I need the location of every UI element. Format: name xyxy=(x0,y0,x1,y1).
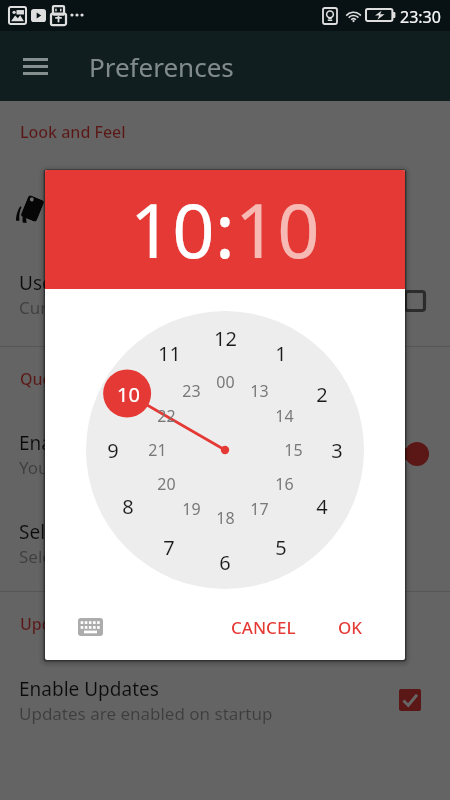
staticText: 10 xyxy=(235,179,320,280)
staticText: 13 xyxy=(250,380,269,402)
staticText: Select difficulty xyxy=(19,519,154,545)
staticText: Select theme xyxy=(65,188,175,213)
button[interactable]: Toggle Enable quests xyxy=(394,441,442,467)
staticText: 19 xyxy=(182,498,201,520)
staticText: Enable quests xyxy=(19,430,144,456)
staticText: 8 xyxy=(122,493,134,520)
staticText: Selected: Normal xyxy=(19,545,156,568)
staticText: 11 xyxy=(158,340,181,367)
button[interactable]: 17 xyxy=(237,495,281,523)
staticText: OK xyxy=(338,616,363,639)
button[interactable]: Select theme xyxy=(0,160,450,260)
button[interactable]: 19 xyxy=(169,495,213,523)
button[interactable]: CANCEL xyxy=(221,606,306,649)
staticText: 18 xyxy=(216,507,235,529)
button[interactable]: 5 xyxy=(255,533,307,561)
button[interactable]: 10 xyxy=(102,380,154,408)
button[interactable]: 22 xyxy=(144,402,188,430)
staticText: 4 xyxy=(316,493,328,520)
staticText: Material Light xyxy=(65,212,163,232)
staticText: 5 xyxy=(275,534,287,561)
staticText: 1 xyxy=(275,340,287,367)
staticText: : xyxy=(215,179,235,280)
staticText: Current theme is light xyxy=(19,296,194,319)
staticText: 14 xyxy=(275,405,294,427)
staticText: 21 xyxy=(148,439,167,461)
button[interactable]: 3 xyxy=(311,436,363,464)
staticText: 17 xyxy=(250,498,269,520)
staticText: 7 xyxy=(163,534,175,561)
button[interactable]: 11 xyxy=(143,339,195,367)
staticText: 15 xyxy=(284,439,303,461)
button[interactable]: 15 xyxy=(271,436,315,464)
button[interactable]: Toggle Enable Updates xyxy=(399,689,421,711)
button[interactable]: Select difficulty xyxy=(0,511,450,589)
button[interactable]: 7 xyxy=(143,533,195,561)
staticText: 6 xyxy=(219,549,231,576)
staticText: 3 xyxy=(331,437,343,464)
staticText: 10 xyxy=(130,179,215,280)
button[interactable]: 9 xyxy=(87,436,139,464)
button[interactable]: 00 xyxy=(203,368,247,396)
button[interactable]: 23 xyxy=(169,377,213,405)
staticText: 12 xyxy=(214,325,237,352)
button[interactable]: Open navigation drawer xyxy=(11,43,59,91)
staticText: Use dark theme xyxy=(19,270,161,296)
staticText: 00 xyxy=(216,371,235,393)
button[interactable]: 12 xyxy=(199,324,251,352)
button[interactable]: 20 xyxy=(144,470,188,498)
staticText: 20 xyxy=(157,473,176,495)
button[interactable]: 18 xyxy=(203,504,247,532)
staticText: 23:30 xyxy=(400,6,441,28)
button[interactable]: 4 xyxy=(296,492,348,520)
button[interactable]: 21 xyxy=(135,436,179,464)
button[interactable]: 16 xyxy=(262,470,306,498)
button[interactable]: 10 xyxy=(130,179,215,280)
staticText: You will receive quests xyxy=(19,456,198,479)
staticText: Enable Updates xyxy=(19,676,159,702)
staticText: 2 xyxy=(316,381,328,408)
staticText: 16 xyxy=(275,473,294,495)
staticText: Quests xyxy=(20,368,74,390)
staticText: 9 xyxy=(107,437,119,464)
staticText: 23 xyxy=(182,380,201,402)
staticText: CANCEL xyxy=(231,616,296,639)
button[interactable]: 1 xyxy=(255,339,307,367)
button[interactable]: Use dark theme xyxy=(0,262,450,340)
button[interactable]: 14 xyxy=(262,402,306,430)
button[interactable]: 2 xyxy=(296,380,348,408)
staticText: Look and Feel xyxy=(20,121,126,143)
button[interactable]: 13 xyxy=(237,377,281,405)
staticText: Preferences xyxy=(89,49,234,84)
button[interactable]: 6 xyxy=(199,548,251,576)
staticText: Updates xyxy=(20,613,84,635)
button[interactable]: Switch to keyboard input xyxy=(78,612,114,642)
button[interactable]: OK xyxy=(328,606,373,649)
button[interactable]: Toggle Use dark theme xyxy=(404,290,426,312)
button[interactable]: 8 xyxy=(102,492,154,520)
button[interactable]: Enable Updates xyxy=(0,668,450,746)
staticText: Updates are enabled on startup xyxy=(19,702,273,725)
button[interactable]: Enable quests xyxy=(0,422,450,500)
staticText: 22 xyxy=(157,405,176,427)
staticText: 10 xyxy=(117,381,140,408)
button[interactable]: 10 xyxy=(235,179,320,280)
